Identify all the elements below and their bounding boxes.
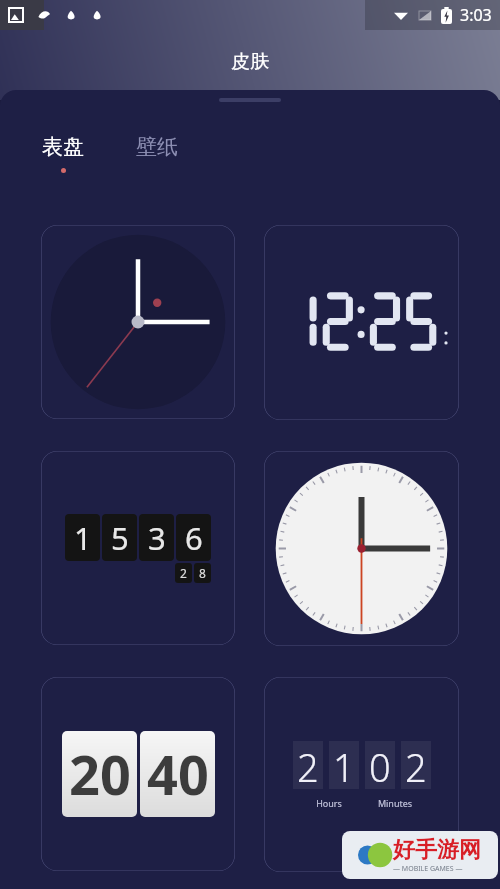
staticText: 2 [297, 741, 319, 789]
staticText: Minutes [362, 797, 428, 809]
button[interactable]: Watch face preview [264, 451, 459, 646]
button[interactable]: Watch face preview [41, 451, 235, 645]
staticText: 2 [180, 565, 187, 581]
staticText: 0 [369, 741, 391, 789]
button[interactable]: Watch face preview [41, 225, 235, 419]
staticText: 8 [199, 565, 206, 581]
staticText: 3 [148, 517, 166, 559]
staticText: 3:03 [460, 4, 492, 26]
staticText: 2 [405, 741, 427, 789]
staticText: 1 [333, 741, 355, 789]
button[interactable]: Watch face preview [41, 677, 235, 871]
staticText: 6 [185, 517, 203, 559]
staticText: 表盘 [42, 134, 84, 160]
staticText: 20 [69, 737, 131, 811]
button[interactable]: 壁纸 [132, 132, 182, 162]
staticText: 皮肤 [231, 50, 269, 74]
staticText: — MOBILE GAMES — [393, 864, 463, 874]
staticText: 40 [147, 737, 209, 811]
staticText: 壁纸 [136, 134, 178, 160]
button[interactable]: Watch face preview [264, 225, 459, 420]
staticText: 1 [74, 517, 92, 559]
button[interactable]: 表盘 [38, 132, 88, 162]
staticText: 好手游网 [393, 836, 481, 864]
button[interactable]: Watch face preview [264, 677, 459, 872]
staticText: Hours [296, 797, 362, 809]
staticText: 5 [111, 517, 129, 559]
